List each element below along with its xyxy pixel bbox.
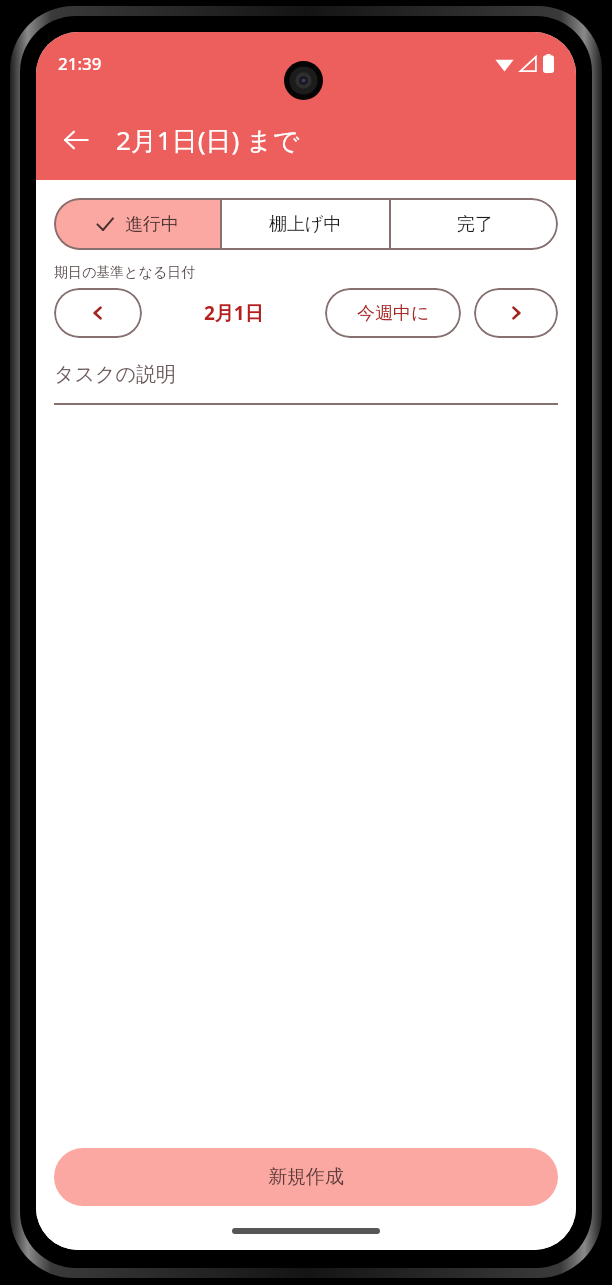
button[interactable]: 棚上げ中 (222, 198, 389, 250)
button[interactable]: 完了 (391, 198, 558, 250)
staticText: 期日の基準となる日付 (54, 264, 196, 282)
button[interactable]: Previous day (54, 288, 142, 338)
staticText: 2月1日(日) まで (116, 122, 300, 158)
button[interactable]: 今週中に (325, 288, 461, 338)
staticText: タスクの説明 (54, 362, 176, 387)
button[interactable]: タスクの説明 (54, 362, 558, 405)
staticText: 今週中に (357, 302, 430, 325)
staticText: 新規作成 (268, 1165, 344, 1189)
button[interactable]: 進行中 (54, 198, 220, 250)
staticText: 2月1日 (204, 300, 264, 326)
staticText: 進行中 (125, 213, 179, 236)
button[interactable]: Back (50, 114, 102, 166)
staticText: 完了 (457, 213, 493, 236)
staticText: 21:39 (58, 52, 102, 75)
staticText: 棚上げ中 (269, 213, 342, 236)
button[interactable]: Next day (474, 288, 558, 338)
button[interactable]: 新規作成 (54, 1148, 558, 1206)
